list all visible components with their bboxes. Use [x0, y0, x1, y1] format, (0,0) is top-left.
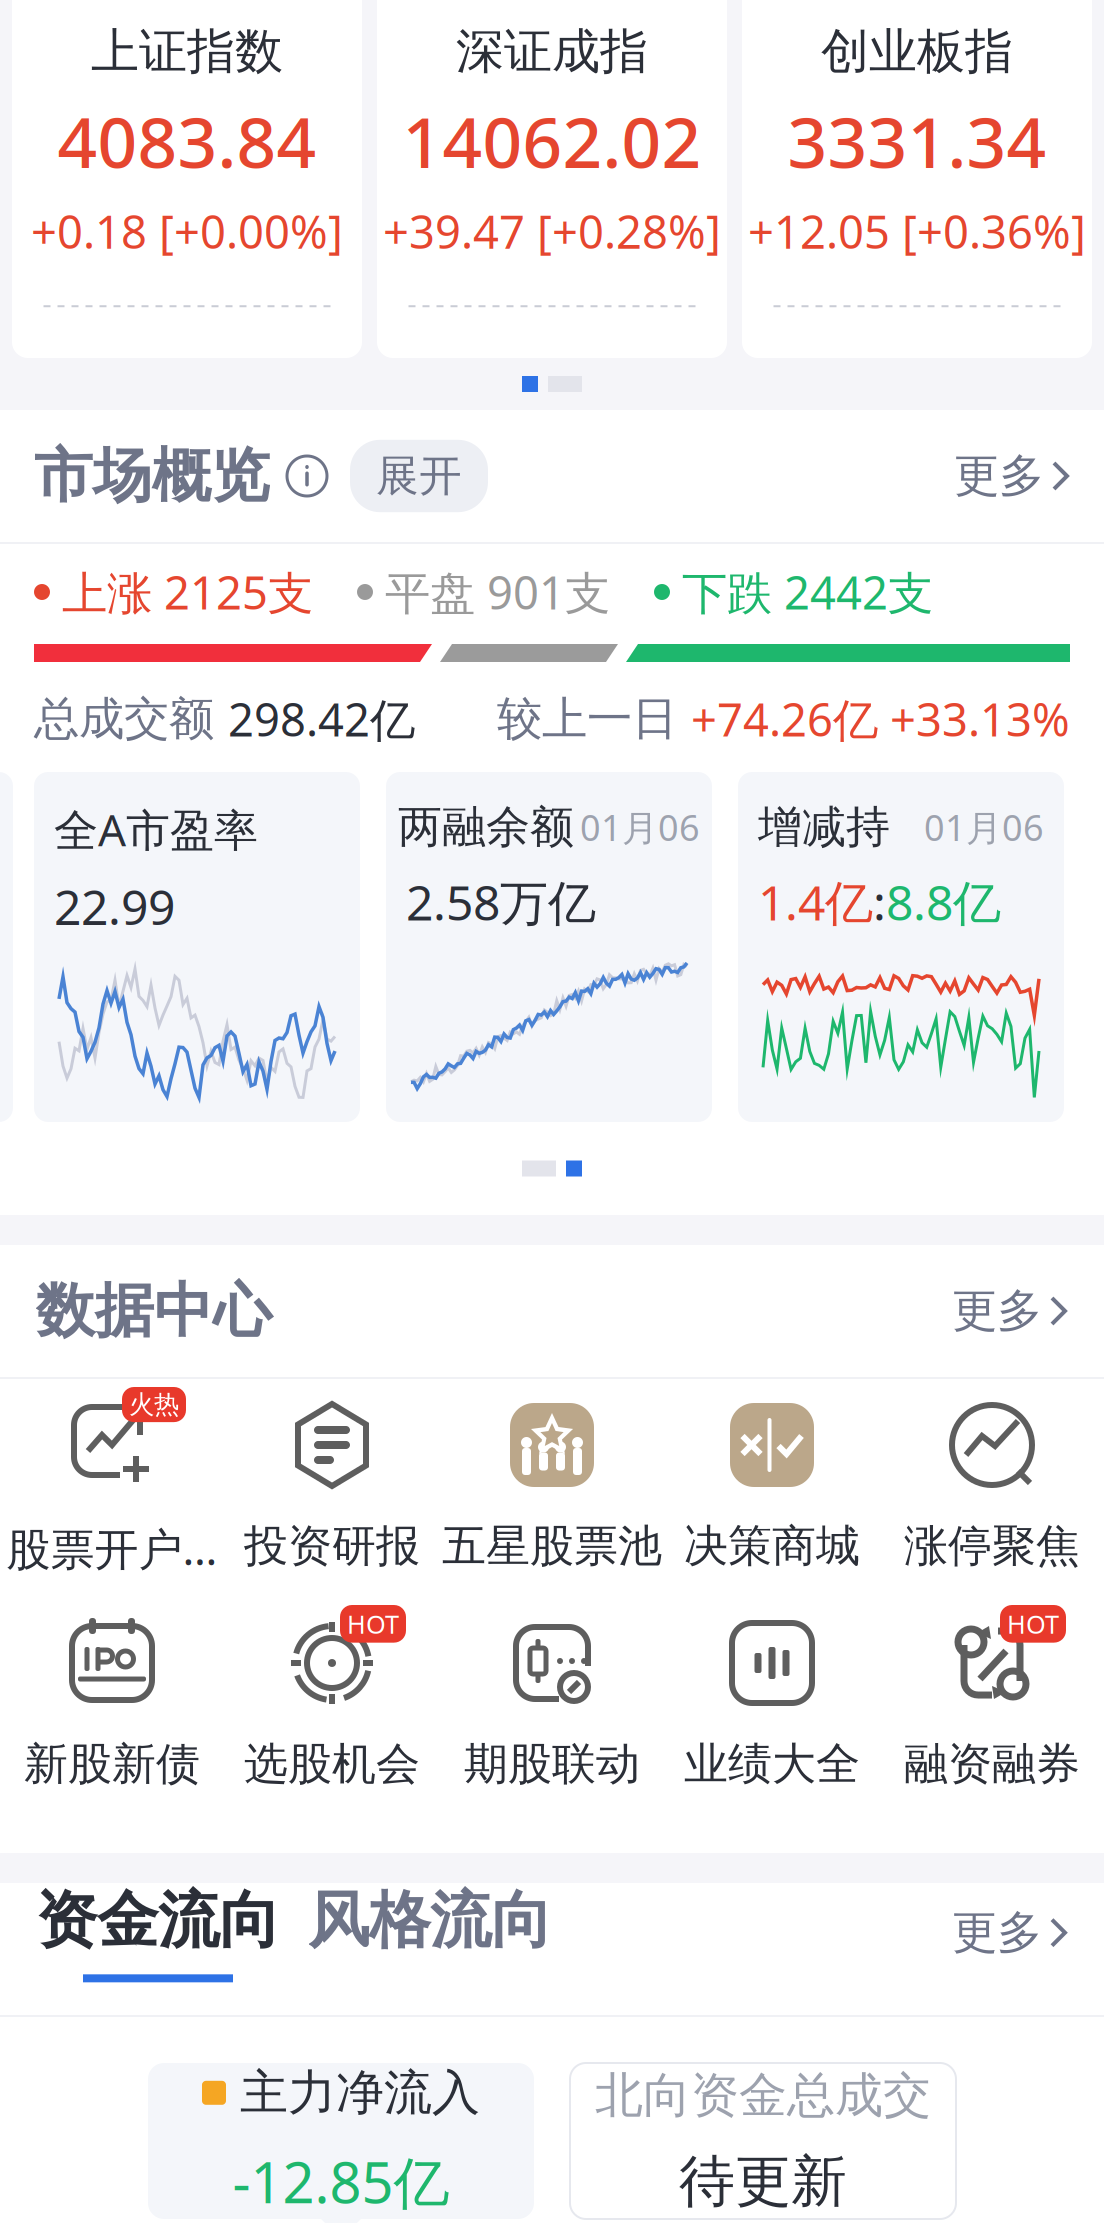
staticText: 298.42亿: [228, 689, 415, 749]
staticText: 待更新: [679, 2147, 847, 2216]
staticText: 风格流向: [308, 1883, 552, 1958]
button[interactable]: 更多: [952, 1271, 1068, 1351]
button[interactable]: 全A市盈率: [34, 772, 360, 1122]
staticText: 上涨 2125支: [62, 562, 313, 622]
button[interactable]: 涨停聚焦: [882, 1397, 1102, 1615]
staticText: 22.99: [54, 874, 175, 938]
staticText: 全A市盈率: [54, 800, 258, 858]
staticText: 展开: [376, 450, 462, 502]
button[interactable]: 两融余额: [386, 772, 712, 1122]
button[interactable]: 五星股票池: [442, 1397, 662, 1615]
staticText: 平盘 901支: [385, 562, 610, 622]
staticText: 市场概览: [34, 440, 270, 512]
button[interactable]: 资金流向: [36, 1883, 280, 1982]
button[interactable]: 业绩大全: [662, 1615, 882, 1833]
staticText: +12.05 [+0.36%]: [748, 201, 1086, 261]
staticText: 4083.84: [57, 95, 316, 187]
staticText: 01月06: [580, 803, 700, 851]
staticText: 期股联动: [464, 1737, 640, 1791]
staticText: 增减持: [758, 800, 890, 854]
staticText: 14062.02: [402, 95, 701, 187]
staticText: 五星股票池: [442, 1519, 662, 1573]
staticText: -12.85亿: [232, 2144, 449, 2219]
staticText: 1.4亿: [758, 870, 873, 934]
staticText: 创业板指: [821, 22, 1013, 81]
button[interactable]: HOT: [882, 1615, 1102, 1833]
button[interactable]: 决策商城: [662, 1397, 882, 1615]
button[interactable]: 新股新债: [2, 1615, 222, 1833]
staticText: 2.58万亿: [406, 870, 596, 934]
staticText: 资金流向: [36, 1883, 280, 1958]
staticText: 总成交额: [34, 691, 228, 747]
staticText: 8.8亿: [886, 870, 1001, 934]
button[interactable]: 北向资金总成交: [570, 2063, 956, 2219]
staticText: +74.26亿 +33.13%: [691, 689, 1070, 749]
staticText: 3331.34: [787, 95, 1046, 187]
staticText: 涨停聚焦: [904, 1519, 1080, 1573]
staticText: :: [873, 870, 886, 934]
staticText: 数据中心: [36, 1275, 272, 1347]
button[interactable]: 更多: [952, 1893, 1068, 1972]
staticText: 融资融券: [904, 1737, 1080, 1791]
staticText: 较上一日: [497, 691, 691, 747]
staticText: 更多: [952, 1905, 1042, 1960]
button[interactable]: 投资研报: [222, 1397, 442, 1615]
staticText: HOT: [1007, 1607, 1059, 1641]
staticText: HOT: [347, 1607, 399, 1641]
button[interactable]: 火热: [2, 1397, 222, 1615]
staticText: 股票开户…: [6, 1519, 217, 1577]
staticText: +0.18 [+0.00%]: [31, 201, 343, 261]
button[interactable]: 期股联动: [442, 1615, 662, 1833]
staticText: 决策商城: [684, 1519, 860, 1573]
staticText: 火热: [129, 1389, 179, 1420]
staticText: 业绩大全: [684, 1737, 860, 1791]
staticText: 深证成指: [456, 22, 648, 81]
staticText: 下跌 2442支: [682, 562, 933, 622]
staticText: 主力净流入: [240, 2063, 480, 2122]
staticText: 两融余额: [398, 800, 574, 854]
button[interactable]: 展开: [350, 440, 488, 512]
button[interactable]: 上证指数: [12, 0, 362, 358]
button[interactable]: 增减持: [738, 772, 1064, 1122]
button[interactable]: 创业板指: [742, 0, 1092, 358]
button[interactable]: HOT: [222, 1615, 442, 1833]
staticText: 01月06: [924, 803, 1044, 851]
staticText: +39.47 [+0.28%]: [383, 201, 721, 261]
button[interactable]: 主力净流入: [148, 2063, 534, 2219]
staticText: 更多: [954, 448, 1044, 504]
staticText: 新股新债: [24, 1737, 200, 1791]
staticText: 上证指数: [91, 22, 283, 81]
button[interactable]: 深证成指: [377, 0, 727, 358]
staticText: 投资研报: [244, 1519, 420, 1573]
staticText: 选股机会: [244, 1737, 420, 1791]
button[interactable]: 风格流向: [308, 1883, 552, 1982]
staticText: 北向资金总成交: [595, 2066, 931, 2125]
staticText: 更多: [952, 1283, 1042, 1339]
button[interactable]: 更多: [954, 436, 1070, 516]
